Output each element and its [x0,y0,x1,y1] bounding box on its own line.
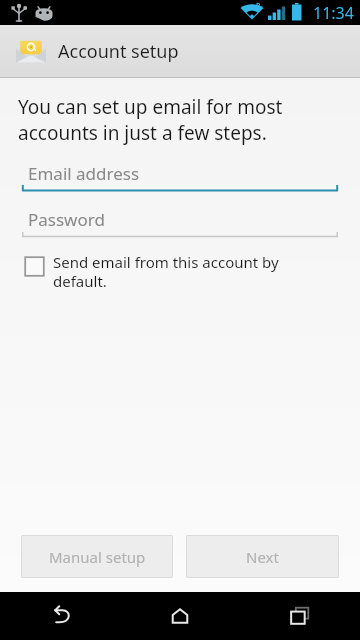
staticText: R [256,1,261,11]
staticText: Send email from this account by default. [53,252,326,291]
other: Send email from this account by default … [24,256,45,277]
staticText: Email address [28,162,140,185]
button[interactable]: Email address [22,159,338,193]
button[interactable]: Manual setup [21,535,173,578]
button[interactable]: Recent apps [240,592,360,640]
staticText: Manual setup [49,547,146,567]
button[interactable]: Home [120,592,240,640]
button[interactable]: Password [22,205,338,239]
staticText: Password [28,208,105,231]
button[interactable]: Next [186,535,339,578]
staticText: Next [246,547,279,567]
staticText: 11:34 [313,2,354,24]
staticText: You can set up email for most accounts i… [18,94,338,145]
button[interactable]: Email [0,25,360,77]
button[interactable]: Back [0,592,120,640]
other: Email [14,34,48,68]
button[interactable]: Send email from this account by default … [24,251,326,291]
staticText: Account setup [58,39,179,64]
